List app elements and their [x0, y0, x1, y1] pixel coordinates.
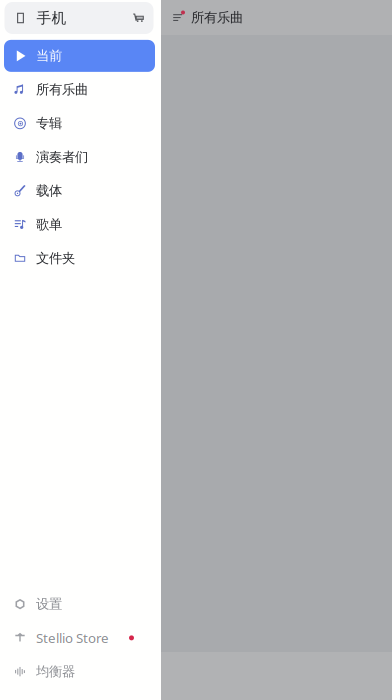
button[interactable]: 所有乐曲	[4, 73, 155, 107]
staticText: Stellio Store	[36, 629, 109, 647]
staticText: 歌单	[36, 216, 62, 233]
button[interactable]: 专辑	[4, 106, 155, 140]
staticText: 演奏者们	[36, 149, 88, 165]
staticText: 设置	[36, 596, 62, 612]
staticText: 所有乐曲	[36, 81, 88, 98]
button[interactable]: Stellio Store	[4, 621, 155, 655]
staticText: 所有乐曲	[191, 9, 243, 26]
staticText: 当前	[36, 48, 62, 64]
button[interactable]: 文件夹	[4, 241, 155, 275]
button[interactable]: 歌单	[4, 208, 155, 242]
button[interactable]: 手机	[4, 2, 154, 39]
staticText: 载体	[36, 183, 62, 199]
button[interactable]: 载体	[4, 174, 155, 208]
button[interactable]: 均衡器	[4, 655, 155, 689]
staticText: 均衡器	[36, 663, 75, 680]
staticText: 专辑	[36, 115, 62, 132]
staticText: 手机	[36, 9, 66, 27]
button[interactable]: Sort	[165, 0, 191, 35]
staticText: 文件夹	[36, 250, 75, 267]
button[interactable]: 当前	[4, 39, 155, 73]
button[interactable]: 设置	[4, 587, 155, 621]
button[interactable]: 演奏者们	[4, 140, 155, 174]
